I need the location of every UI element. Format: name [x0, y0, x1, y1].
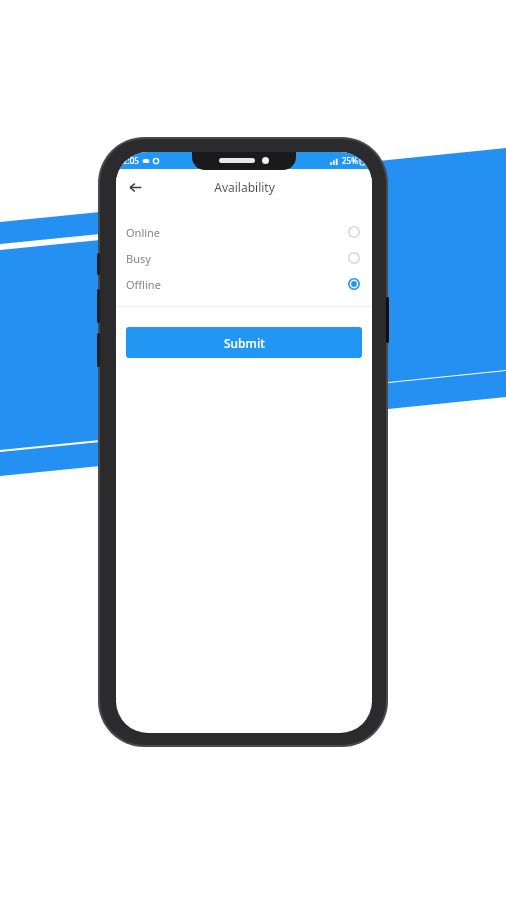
button[interactable]: Offline [116, 271, 372, 297]
staticText: 2:05 [123, 155, 139, 166]
staticText: Offline [126, 277, 161, 292]
staticText: Busy [126, 251, 151, 266]
button[interactable]: Back [120, 172, 150, 202]
button[interactable]: Submit [126, 327, 362, 358]
staticText: 25% [342, 155, 358, 166]
staticText: Submit [224, 335, 265, 351]
staticText: Availability [214, 179, 275, 195]
button[interactable]: Online [116, 219, 372, 245]
staticText: Online [126, 225, 161, 240]
button[interactable]: Busy [116, 245, 372, 271]
